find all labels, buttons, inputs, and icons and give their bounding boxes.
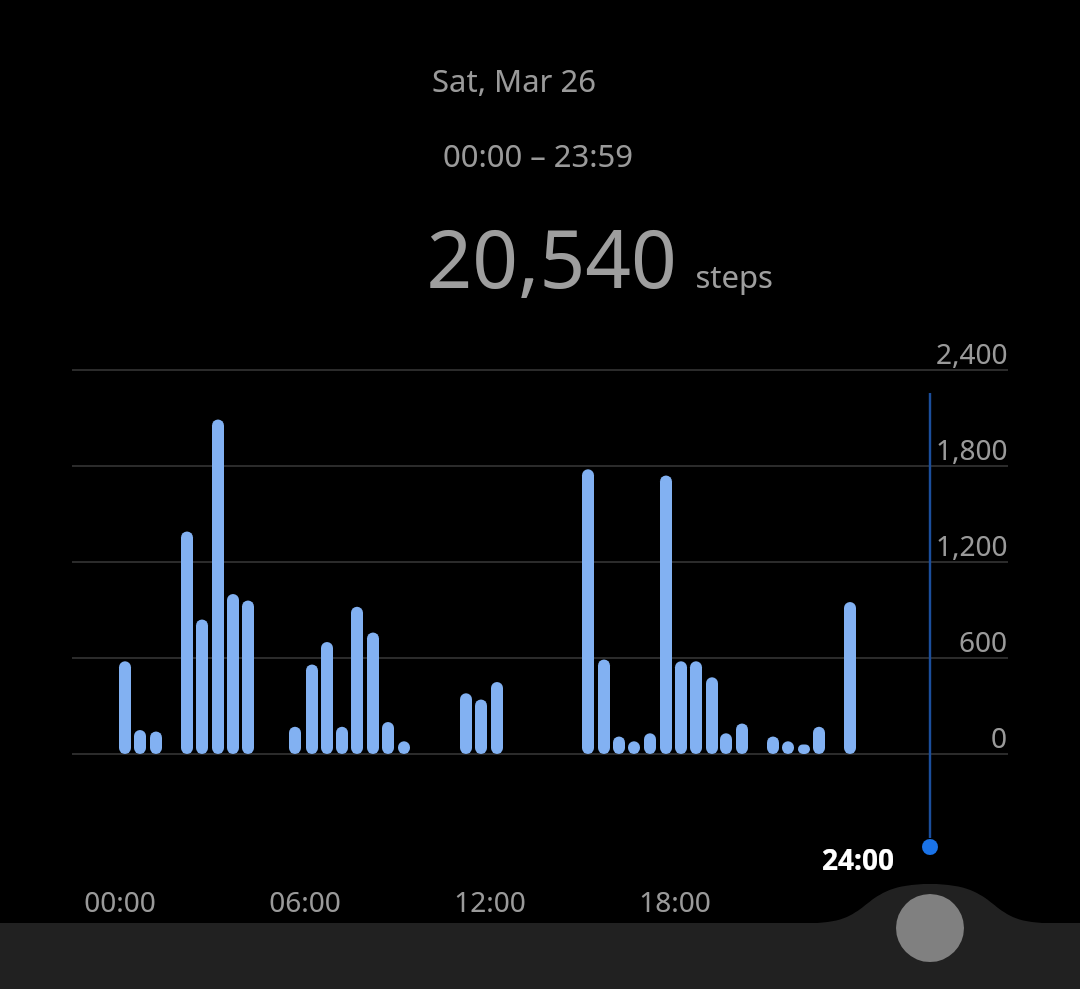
button[interactable]: Step count chart for Sat, Mar 26 — [0, 0, 1080, 989]
